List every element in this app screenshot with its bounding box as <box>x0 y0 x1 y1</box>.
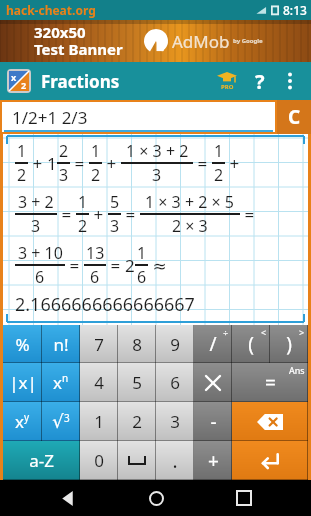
staticText: = <box>193 152 212 175</box>
staticText: 1 <box>94 410 104 433</box>
staticText: 2.1666666666666667 <box>15 292 195 317</box>
staticText: Test Banner <box>34 39 123 59</box>
staticText: n <box>62 371 69 385</box>
staticText: % <box>15 333 30 356</box>
button[interactable]: Home <box>134 480 178 516</box>
button[interactable]: 1 <box>80 402 118 441</box>
button[interactable]: 8 <box>118 325 156 363</box>
staticText: ) <box>286 331 292 357</box>
button[interactable]: ( <box>232 325 270 363</box>
staticText: 2 <box>21 79 27 91</box>
staticText: ( <box>248 331 254 357</box>
staticText: 2 <box>132 410 142 433</box>
staticText: / <box>209 331 217 357</box>
button[interactable]: n! <box>42 325 80 363</box>
staticText: 6 <box>170 371 180 394</box>
button[interactable]: 3 <box>156 402 194 441</box>
staticText: 6 <box>90 266 100 288</box>
button[interactable]: 6 <box>156 363 194 402</box>
staticText: + <box>225 152 240 175</box>
staticText: PRO <box>221 83 234 91</box>
button[interactable]: Recents <box>222 480 266 516</box>
button[interactable]: Enter <box>232 441 308 480</box>
staticText: 9 <box>170 333 180 356</box>
staticText: 1 × 3 + 2 <box>126 140 189 162</box>
staticText: + <box>208 448 219 474</box>
staticText: = <box>70 152 89 175</box>
staticText: 13 <box>86 242 105 264</box>
button[interactable]: x <box>42 363 80 402</box>
button[interactable]: 4 <box>80 363 118 402</box>
staticText: . <box>172 448 178 474</box>
button[interactable]: |x| <box>3 363 42 402</box>
button[interactable]: a-Z <box>3 441 80 480</box>
staticText: = <box>240 203 255 226</box>
staticText: 1 × 3 + 2 × 5 <box>145 191 235 213</box>
staticText: C <box>288 104 301 130</box>
staticText: = <box>265 370 276 396</box>
staticText: = <box>57 203 76 226</box>
staticText: 1 <box>91 140 101 162</box>
button[interactable]: 5 <box>118 363 156 402</box>
staticText: n! <box>53 333 69 356</box>
button[interactable]: + <box>194 441 232 480</box>
staticText: = <box>65 254 84 277</box>
staticText: 3 <box>59 164 69 186</box>
staticText: 3 <box>64 411 70 425</box>
staticText: x <box>11 71 17 83</box>
button[interactable]: ) <box>270 325 308 363</box>
staticText: = <box>121 203 140 226</box>
button[interactable]: - <box>194 402 232 441</box>
button[interactable]: / <box>194 325 232 363</box>
button[interactable]: x <box>3 402 42 441</box>
staticText: AdMob <box>172 30 230 53</box>
staticText: 0 <box>94 449 104 472</box>
button[interactable]: 2 <box>118 402 156 441</box>
button[interactable]: % <box>3 325 42 363</box>
button[interactable]: √ <box>42 402 80 441</box>
staticText: 2 <box>59 140 69 162</box>
button[interactable]: 9 <box>156 325 194 363</box>
staticText: 2 <box>214 164 224 186</box>
staticText: by Google <box>233 37 263 45</box>
button[interactable]: 1/2+1 2/3 <box>2 102 275 132</box>
staticText: 1/2+1 2/3 <box>12 106 88 129</box>
staticText: 3 <box>170 410 180 433</box>
staticText: 2 × 3 <box>172 215 208 237</box>
staticText: y <box>24 410 30 424</box>
staticText: |x| <box>9 371 37 394</box>
staticText: ≈ <box>148 254 167 277</box>
staticText: 3 + 2 <box>18 191 54 213</box>
button[interactable]: More options <box>276 67 304 95</box>
staticText: 2 <box>91 164 101 186</box>
staticText: 320x50 <box>34 22 86 42</box>
staticText: 2 <box>17 164 27 186</box>
button[interactable]: Go Pro <box>210 64 244 98</box>
staticText: 6 <box>35 266 45 288</box>
button[interactable]: Backspace <box>232 402 308 441</box>
staticText: 3 <box>31 215 41 237</box>
button[interactable]: Help <box>244 65 276 97</box>
staticText: 3 <box>152 164 162 186</box>
staticText: 3 + 10 <box>18 242 63 264</box>
staticText: Fractions <box>41 70 120 93</box>
staticText: √ <box>52 411 64 432</box>
button[interactable]: 0 <box>80 441 118 480</box>
staticText: = <box>106 254 125 277</box>
button[interactable]: . <box>156 441 194 480</box>
button[interactable]: Space <box>118 441 156 480</box>
button[interactable]: Back <box>45 480 89 516</box>
staticText: - <box>210 409 217 435</box>
staticText: 1 <box>78 191 88 213</box>
button[interactable]: = <box>232 363 308 402</box>
button[interactable]: Clear <box>277 100 311 134</box>
button[interactable]: Times <box>194 363 232 402</box>
staticText: 5 <box>132 371 142 394</box>
staticText: Ans <box>289 364 305 376</box>
staticText: hack-cheat.org <box>6 2 96 18</box>
button[interactable]: 7 <box>80 325 118 363</box>
staticText: + <box>28 152 47 175</box>
staticText: a-Z <box>29 449 54 472</box>
staticText: x <box>53 371 62 394</box>
staticText: 1 <box>47 152 57 175</box>
